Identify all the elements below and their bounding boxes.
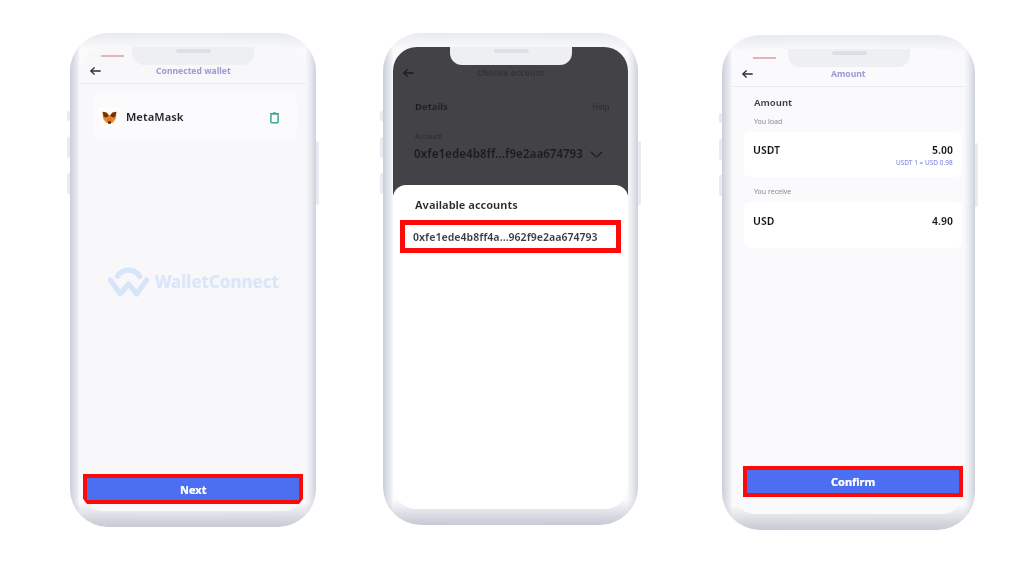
- staticText: Help: [592, 101, 610, 112]
- staticText: 5.00: [932, 143, 953, 157]
- staticText: 0xfe1ede4b8ff…f9e2aa674793: [414, 146, 583, 162]
- button[interactable]: Delete wallet: [265, 108, 283, 126]
- staticText: Choose account: [477, 67, 545, 79]
- staticText: Details: [415, 100, 448, 113]
- staticText: 4.90: [932, 214, 953, 228]
- staticText: USDT: [753, 143, 781, 157]
- staticText: You load: [754, 117, 783, 127]
- staticText: Confirm: [831, 474, 876, 489]
- button[interactable]: Help: [592, 101, 610, 112]
- button[interactable]: Back: [734, 61, 760, 87]
- staticText: USDT 1 = USD 0.98: [896, 158, 953, 167]
- button[interactable]: MetaMask: [93, 92, 297, 141]
- button[interactable]: Confirm: [747, 470, 959, 493]
- staticText: MetaMask: [126, 109, 184, 124]
- staticText: Connected wallet: [156, 65, 231, 77]
- button[interactable]: Next: [87, 478, 299, 500]
- button[interactable]: Back: [395, 60, 421, 86]
- staticText: 0xfe1ede4b8ff4a…962f9e2aa674793: [413, 230, 598, 244]
- staticText: Amount: [831, 68, 866, 80]
- button[interactable]: 0xfe1ede4b8ff4a…962f9e2aa674793: [405, 225, 616, 248]
- staticText: Account: [415, 132, 442, 142]
- button[interactable]: Back: [82, 58, 108, 84]
- staticText: Amount: [754, 96, 793, 109]
- staticText: WalletConnect: [155, 270, 279, 293]
- button[interactable]: USD: [744, 202, 962, 248]
- staticText: USD: [753, 214, 775, 228]
- staticText: Available accounts: [415, 197, 518, 212]
- staticText: You receive: [754, 187, 792, 197]
- button[interactable]: USDT: [744, 132, 962, 177]
- staticText: Next: [180, 482, 207, 497]
